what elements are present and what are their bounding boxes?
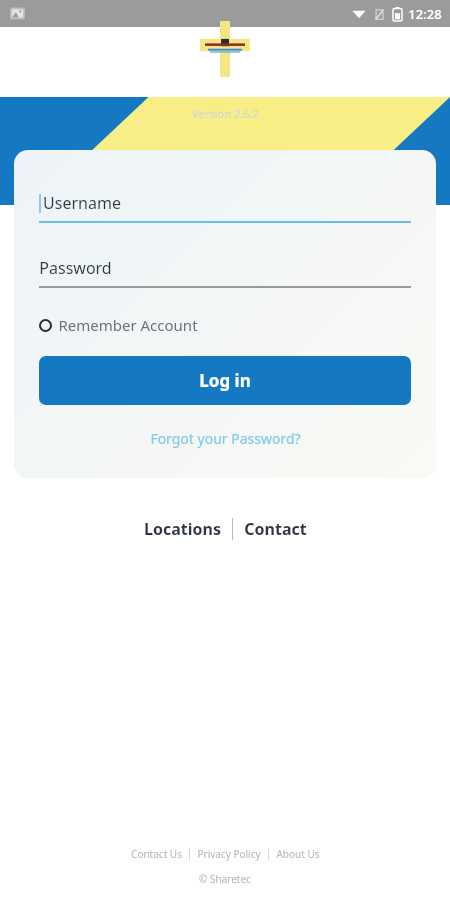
button[interactable]: About Us [269, 845, 327, 863]
button[interactable]: Remember Account [39, 313, 198, 337]
staticText: © Sharetec [199, 872, 251, 886]
button[interactable]: Forgot your Password? [142, 425, 309, 452]
staticText: Password [39, 257, 112, 279]
button[interactable]: Contact Us [124, 845, 189, 863]
button[interactable]: Locations [133, 513, 232, 545]
other: Screenshot [10, 6, 25, 21]
staticText: Log in [199, 369, 251, 392]
staticText: Username [43, 192, 121, 214]
button[interactable]: Log in [39, 356, 411, 405]
staticText: 12:28 [408, 5, 442, 23]
button[interactable]: Contact [233, 513, 318, 545]
staticText: Contact [244, 518, 307, 540]
staticText: Privacy Policy [197, 847, 261, 861]
staticText: Version 2.6.2 [192, 106, 259, 121]
staticText: Remember Account [58, 315, 198, 335]
button[interactable]: Username [39, 192, 411, 223]
staticText: Forgot your Password? [150, 429, 301, 448]
button[interactable]: Password [39, 257, 411, 288]
button[interactable]: Privacy Policy [190, 845, 268, 863]
staticText: Locations [144, 518, 221, 540]
staticText: About Us [276, 847, 320, 861]
staticText: Contact Us [131, 847, 182, 861]
